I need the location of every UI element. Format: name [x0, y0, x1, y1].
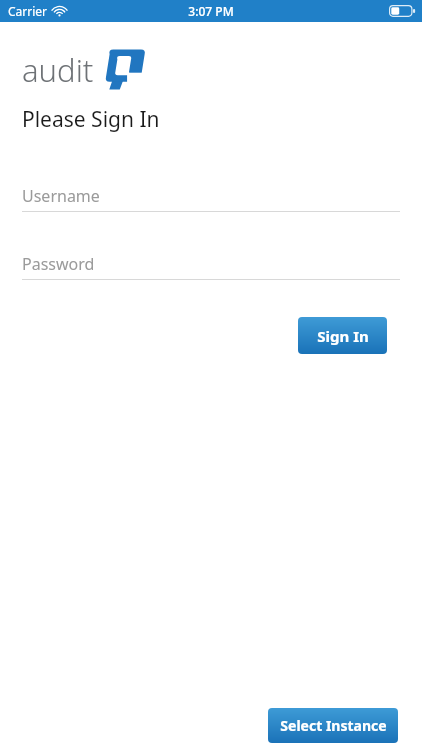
staticText: Please Sign In	[22, 105, 160, 134]
staticText: Sign In	[317, 326, 369, 346]
staticText: Username	[22, 185, 100, 207]
staticText: 3:07 PM	[188, 3, 234, 19]
other: auditQ logo	[100, 44, 148, 90]
button[interactable]: Sign In	[298, 317, 387, 354]
button[interactable]: Username	[22, 185, 400, 212]
button[interactable]: Select Instance	[268, 708, 398, 743]
staticText: Select Instance	[280, 716, 387, 735]
staticText: audit	[22, 49, 94, 91]
staticText: Password	[22, 253, 95, 275]
button[interactable]: Password	[22, 253, 400, 280]
staticText: Carrier	[8, 3, 48, 19]
